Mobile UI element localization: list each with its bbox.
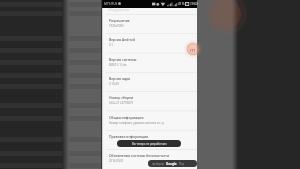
staticText: Номер сборки <box>109 95 134 100</box>
button[interactable]: Разрешение <box>101 14 197 33</box>
staticText: 1920x1080 <box>109 24 124 28</box>
staticText: 5.1 <box>109 43 113 47</box>
staticText: Разрешение <box>109 18 130 23</box>
other: Watermark <box>184 40 202 58</box>
staticText: L04-L21 C471B019 <box>109 101 134 105</box>
button[interactable]: Версия Android <box>101 33 197 52</box>
staticText: Версия Android <box>109 37 135 42</box>
button[interactable]: Номер сборки <box>101 91 197 110</box>
button[interactable]: проверка <box>148 160 197 167</box>
button[interactable]: Общая информация <box>101 111 197 130</box>
button[interactable]: Правовая информация <box>101 130 197 149</box>
button[interactable]: Версия системы <box>101 53 197 72</box>
button[interactable]: Версия ядра <box>101 72 197 91</box>
other: Alarm <box>118 2 121 5</box>
staticText: Вы теперь не разработчик <box>132 142 167 146</box>
staticText: Обновления системы безопасности <box>109 153 170 158</box>
staticText: Оборудование <box>108 8 130 12</box>
staticText: Правовая информация <box>109 134 149 139</box>
staticText: 19:02 <box>190 2 199 6</box>
staticText: Play <box>179 162 185 166</box>
staticText: EMUI 3.1 Lite <box>109 63 127 67</box>
staticText: 3.10.49 <box>109 82 119 86</box>
staticText: Версия ядра <box>109 76 131 81</box>
staticText: Общая информация <box>109 115 144 120</box>
staticText: Версия системы <box>109 57 137 62</box>
staticText: Google <box>166 162 177 166</box>
button[interactable]: Обновления системы безопасности <box>101 149 197 168</box>
staticText: MTS RUS <box>104 2 118 6</box>
staticText: 2016-09-01 <box>109 159 124 163</box>
staticText: m <box>190 46 196 53</box>
button[interactable]: Вы теперь не разработчик <box>117 140 181 147</box>
staticText: проверка <box>152 162 164 166</box>
staticText: Номер телефона, уровень сигнала и т. д. <box>109 121 165 125</box>
staticText: 41% <box>178 2 185 6</box>
